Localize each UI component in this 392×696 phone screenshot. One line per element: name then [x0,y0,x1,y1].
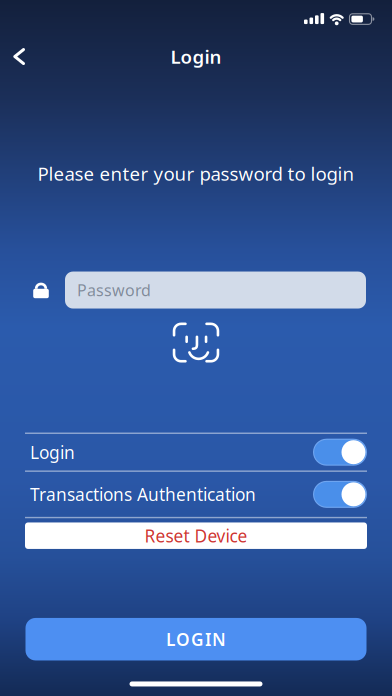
staticText: Login [30,441,75,464]
staticText: Please enter your password to login [37,161,354,186]
staticText: Transactions Authentication [30,483,256,506]
button[interactable]: LOGIN [25,618,366,660]
staticText: Login [170,44,221,69]
button[interactable]: Transactions Authentication toggle [25,472,367,517]
button[interactable]: Reset Device [25,522,367,549]
button[interactable]: Login toggle [25,434,367,470]
staticText: LOGIN [166,628,226,651]
button[interactable]: Face ID [173,323,219,363]
staticText: Password [77,279,151,301]
staticText: Reset Device [144,524,247,547]
button[interactable]: Password [65,272,366,309]
button[interactable]: Back [0,36,25,77]
